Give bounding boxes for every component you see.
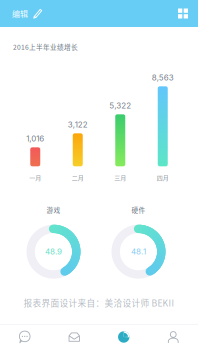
staticText: 1,016 (26, 134, 44, 143)
staticText: 48.9 (45, 247, 62, 256)
staticText: 硬件 (131, 205, 145, 215)
staticText: 三月 (114, 173, 126, 182)
button[interactable]: Inbox (49, 324, 99, 350)
button[interactable]: Reports (99, 324, 148, 350)
staticText: 5,322 (109, 101, 131, 110)
staticText: 四月 (157, 173, 169, 182)
staticText: 3,122 (68, 120, 88, 129)
staticText: 48.1 (131, 247, 146, 256)
button[interactable]: 编辑 (0, 0, 49, 27)
button[interactable]: Profile (148, 324, 198, 350)
staticText: 二月 (72, 173, 84, 182)
staticText: 2016上半年业绩增长 (13, 42, 78, 52)
button[interactable]: Grid (178, 0, 198, 27)
button[interactable]: Messages (0, 324, 49, 350)
staticText: 一月 (29, 173, 41, 182)
staticText: 游戏 (46, 205, 60, 215)
staticText: 报表界面设计来自：美洽设计师 BEKII (23, 296, 174, 309)
staticText: 8,563 (152, 73, 174, 82)
staticText: 编辑 (12, 8, 28, 19)
